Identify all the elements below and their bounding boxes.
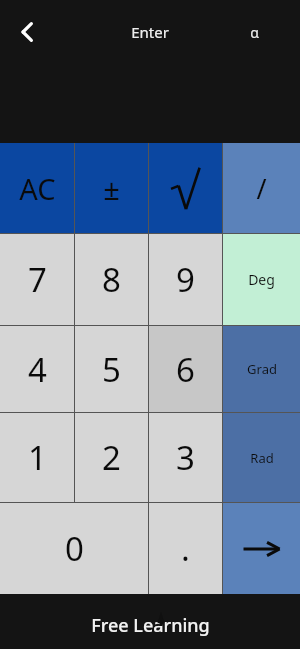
button[interactable]: Square root <box>149 143 222 233</box>
button[interactable]: 1 <box>0 413 74 502</box>
button[interactable]: Rad <box>223 413 300 502</box>
staticText: Deg <box>248 270 275 289</box>
button[interactable]: Back <box>8 14 46 50</box>
button[interactable]: Deg <box>223 234 300 325</box>
staticText: 8 <box>102 257 121 302</box>
button[interactable]: 6 <box>149 326 222 412</box>
staticText: 0 <box>65 526 84 571</box>
button[interactable]: ± <box>75 143 148 233</box>
staticText: 1 <box>28 435 47 480</box>
staticText: 6 <box>176 347 195 392</box>
button[interactable]: 7 <box>0 234 74 325</box>
button[interactable]: 9 <box>149 234 222 325</box>
staticText: Rad <box>250 449 274 467</box>
staticText: / <box>256 170 267 207</box>
staticText: ± <box>103 169 120 208</box>
staticText: 4 <box>28 347 47 392</box>
button[interactable]: 2 <box>75 413 148 502</box>
staticText: Enter <box>131 22 169 42</box>
button[interactable]: . <box>149 503 222 594</box>
staticText: α <box>250 23 259 42</box>
button[interactable]: AC <box>0 143 74 233</box>
staticText: 9 <box>176 257 195 302</box>
staticText: Grad <box>247 360 277 378</box>
button[interactable]: 3 <box>149 413 222 502</box>
staticText: 7 <box>28 257 47 302</box>
button[interactable]: 8 <box>75 234 148 325</box>
staticText: AC <box>19 169 56 208</box>
staticText: 5 <box>102 347 121 392</box>
button[interactable]: 4 <box>0 326 74 412</box>
staticText: . <box>181 526 190 571</box>
button[interactable]: 0 <box>0 503 148 594</box>
button[interactable]: Grad <box>223 326 300 412</box>
button[interactable]: Enter <box>223 503 300 594</box>
staticText: Free Learning <box>91 613 210 638</box>
staticText: 2 <box>102 435 121 480</box>
staticText: 3 <box>176 435 195 480</box>
button[interactable]: Alpha <box>238 16 270 48</box>
button[interactable]: / <box>223 143 300 233</box>
button[interactable]: 5 <box>75 326 148 412</box>
